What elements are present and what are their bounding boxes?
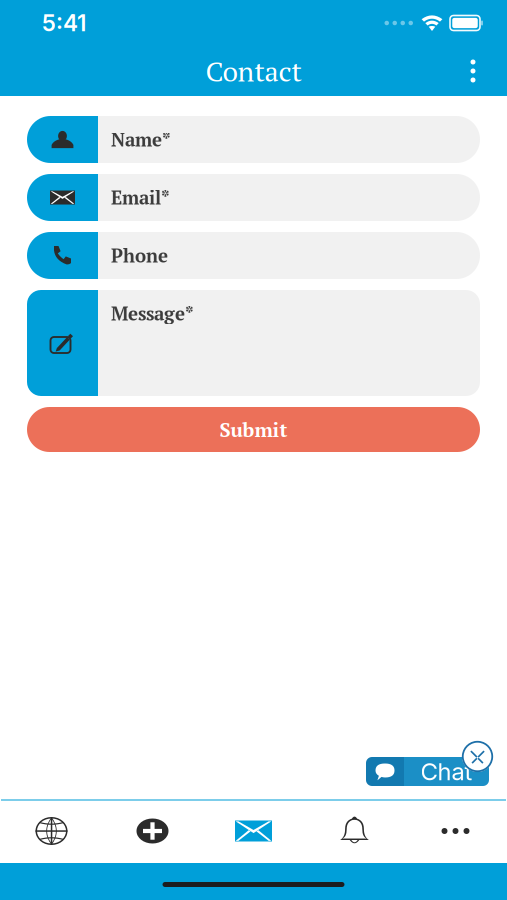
- staticText: Message*: [111, 301, 194, 326]
- staticText: Name*: [111, 127, 171, 152]
- button[interactable]: Web: [1, 799, 102, 863]
- button[interactable]: Message*: [27, 290, 480, 396]
- button[interactable]: Mail: [203, 799, 304, 863]
- button[interactable]: Notifications: [304, 799, 405, 863]
- staticText: Email*: [111, 185, 170, 210]
- button[interactable]: Name*: [27, 116, 480, 163]
- button[interactable]: Close chat: [462, 741, 493, 772]
- button[interactable]: Chat: [366, 757, 489, 786]
- button[interactable]: Submit: [27, 407, 480, 452]
- staticText: Contact: [205, 52, 301, 90]
- staticText: Phone: [111, 243, 168, 268]
- button[interactable]: More: [405, 799, 506, 863]
- staticText: Submit: [219, 416, 287, 443]
- button[interactable]: More options: [451, 47, 495, 95]
- button[interactable]: Phone: [27, 232, 480, 279]
- button[interactable]: Add: [102, 799, 203, 863]
- staticText: 5:41: [42, 9, 86, 37]
- button[interactable]: Email*: [27, 174, 480, 221]
- staticText: Chat: [420, 757, 472, 786]
